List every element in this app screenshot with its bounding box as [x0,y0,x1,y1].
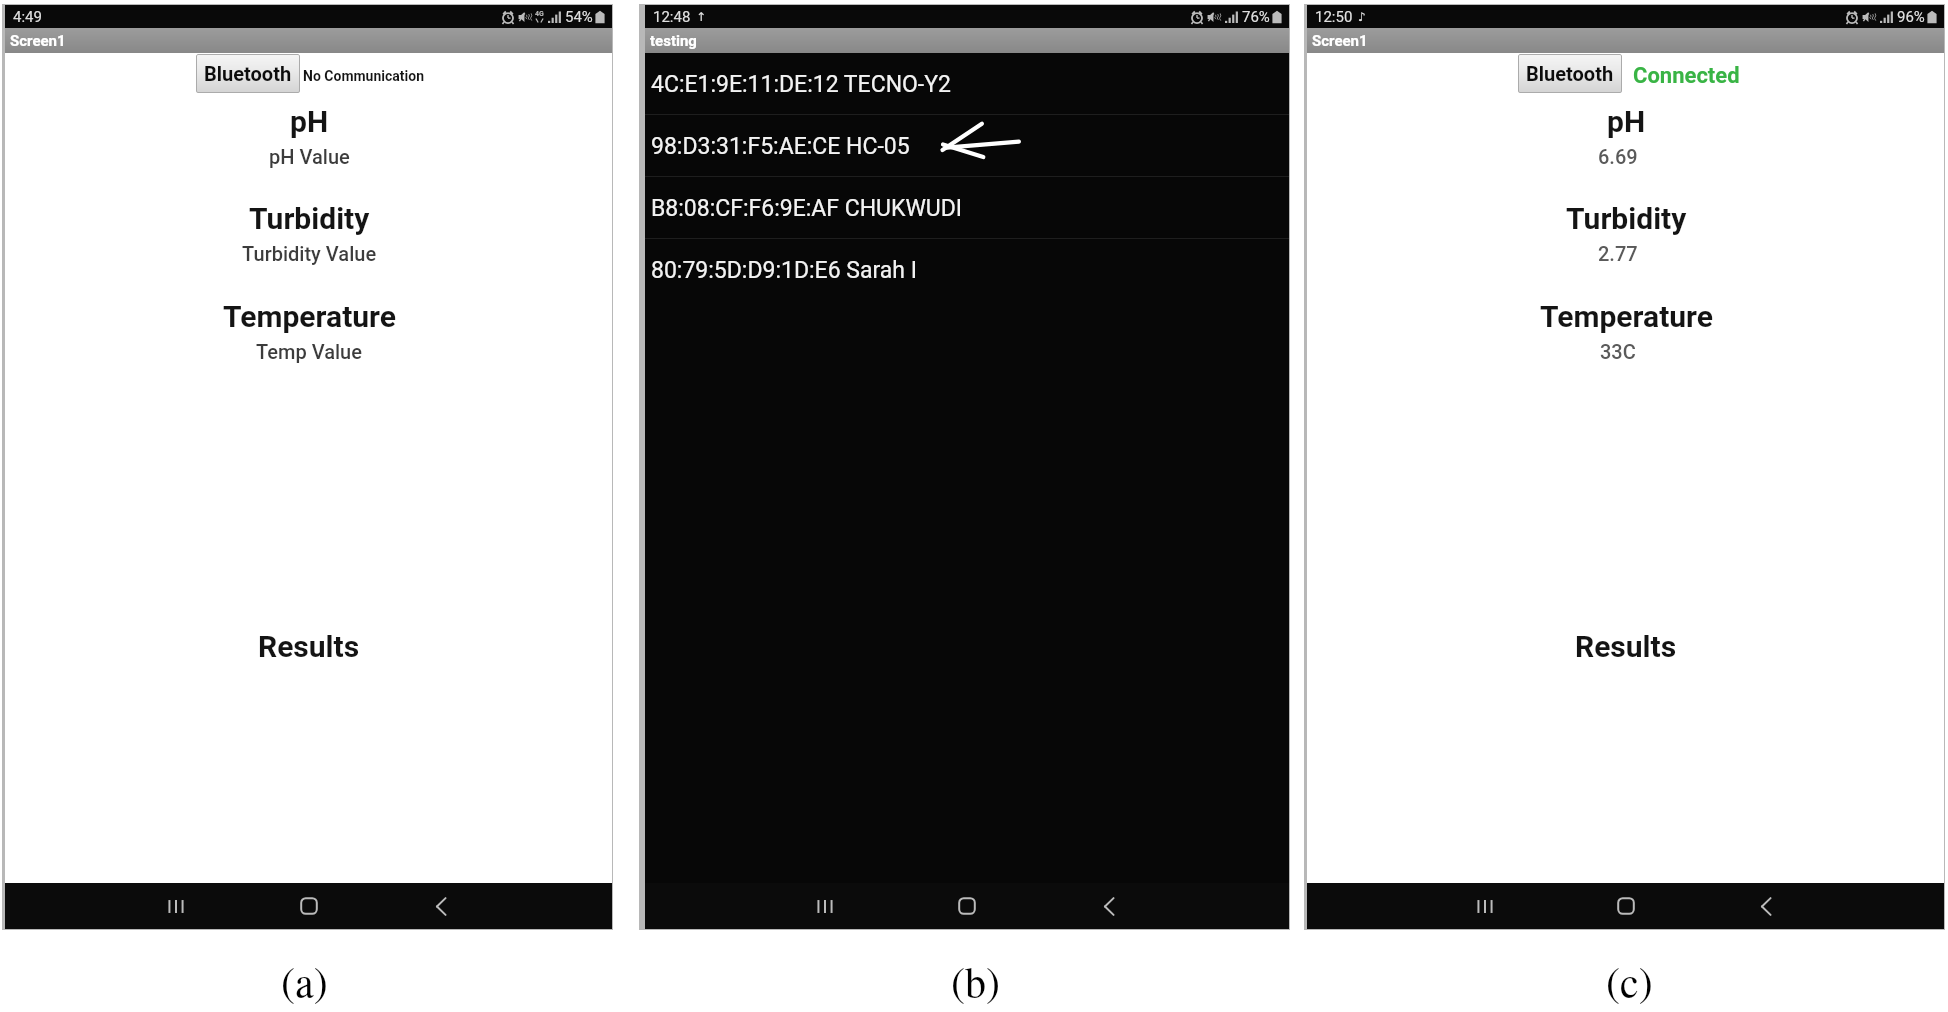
button[interactable]: Back [418,883,464,929]
staticText: pH Value [269,145,350,168]
staticText: 98:D3:31:F5:AE:CE HC-05 [651,133,910,160]
button[interactable]: Home [286,883,332,929]
staticText: 33C [1600,340,1636,363]
staticText: Turbidity [249,201,370,236]
button[interactable]: Recent apps [802,883,848,929]
button[interactable]: 4C:E1:9E:11:DE:12 TECNO-Y2 [645,53,1289,115]
button[interactable]: Recent apps [1462,883,1508,929]
staticText: Turbidity Value [242,242,377,265]
staticText: 4C:E1:9E:11:DE:12 TECNO-Y2 [651,71,951,98]
staticText: 12:48 [653,8,691,26]
button[interactable]: Home [944,883,990,929]
staticText: 6.69 [1598,145,1638,168]
staticText: (b) [951,953,1000,1009]
staticText: Screen1 [10,32,66,50]
button[interactable]: Back [1086,883,1132,929]
staticText: Temperature [1540,299,1713,334]
staticText: 2.77 [1598,242,1638,265]
button[interactable]: 80:79:5D:D9:1D:E6 Sarah I [645,239,1289,301]
staticText: 54% [565,8,593,26]
staticText: 4G [535,10,544,18]
button[interactable]: Back [1743,883,1789,929]
staticText: Temp Value [256,340,362,363]
staticText: pH [290,104,329,139]
staticText: (a) [281,953,328,1009]
staticText: B8:08:CF:F6:9E:AF CHUKWUDI [651,195,963,222]
staticText: (c) [1606,953,1653,1009]
staticText: pH [1607,104,1646,139]
button[interactable]: Bluetooth [196,54,300,93]
staticText: Results [258,629,360,664]
staticText: ↑ [696,10,707,24]
button[interactable]: Bluetooth [1518,54,1622,93]
staticText: testing [650,32,697,50]
staticText: Temperature [223,299,396,334]
button[interactable]: Home [1603,883,1649,929]
staticText: Screen1 [1312,32,1368,50]
staticText: 4:49 [13,8,42,26]
staticText: No Communication [303,68,425,84]
staticText: 96% [1897,8,1925,26]
staticText: 76% [1242,8,1270,26]
staticText: Bluetooth [204,62,292,85]
button[interactable]: 98:D3:31:F5:AE:CE HC-05 [645,115,1289,177]
staticText: Bluetooth [1526,62,1614,85]
staticText: 80:79:5D:D9:1D:E6 Sarah I [651,257,917,284]
staticText: Results [1575,629,1677,664]
staticText: Turbidity [1566,201,1687,236]
staticText: ♪ [1358,10,1366,24]
button[interactable]: B8:08:CF:F6:9E:AF CHUKWUDI [645,177,1289,239]
button[interactable]: Recent apps [153,883,199,929]
staticText: 12:50 [1315,8,1353,26]
staticText: Connected [1633,63,1740,89]
